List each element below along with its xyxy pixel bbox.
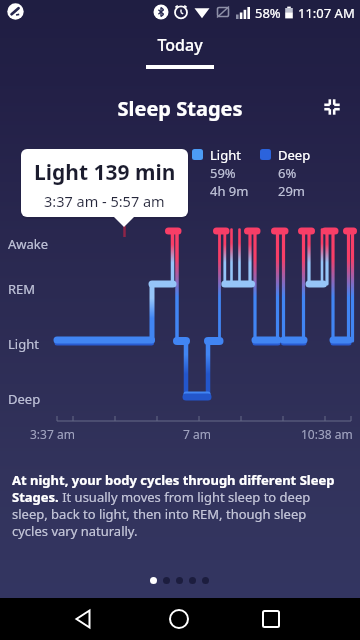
staticText: 10:38 am xyxy=(301,426,353,442)
staticText: Light 139 min xyxy=(34,158,176,187)
button[interactable] xyxy=(176,577,183,584)
button[interactable] xyxy=(189,577,196,584)
staticText: 3:37 am xyxy=(30,426,75,442)
staticText: 6% xyxy=(278,164,297,182)
staticText: 58% xyxy=(255,4,281,22)
staticText: Awake xyxy=(8,235,49,253)
button[interactable] xyxy=(169,609,189,629)
staticText: Light xyxy=(210,146,241,164)
staticText: 3:37 am - 5:57 am xyxy=(44,191,165,211)
staticText: Deep xyxy=(8,390,41,408)
button[interactable] xyxy=(163,577,170,584)
button[interactable] xyxy=(323,98,341,116)
staticText: 7 am xyxy=(183,426,211,442)
staticText: 11:07 AM xyxy=(298,4,355,22)
staticText: REM xyxy=(8,280,36,298)
button[interactable] xyxy=(202,577,209,584)
button[interactable]: Light xyxy=(192,146,352,196)
staticText: At night, your body cycles through diffe… xyxy=(12,471,360,540)
staticText: Light xyxy=(8,335,39,353)
staticText: 59% xyxy=(210,164,236,182)
button[interactable]: Light 139 min xyxy=(21,149,188,217)
staticText: Deep xyxy=(278,146,311,164)
button[interactable] xyxy=(74,609,94,629)
staticText: Today xyxy=(0,34,360,56)
staticText: 29m xyxy=(278,182,306,196)
button[interactable] xyxy=(261,609,281,629)
button[interactable] xyxy=(150,577,157,584)
staticText: 4h 9m xyxy=(210,182,249,196)
staticText: Sleep Stages xyxy=(0,95,360,122)
